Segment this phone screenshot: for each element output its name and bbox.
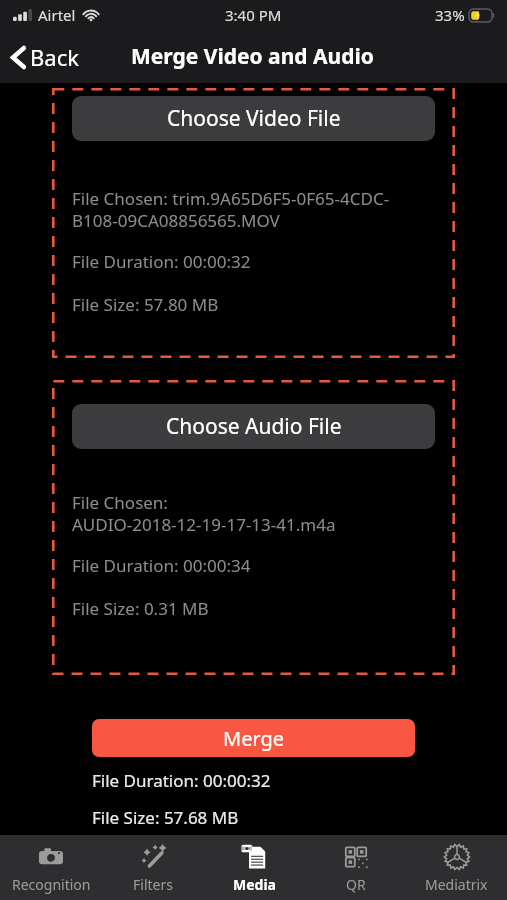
button[interactable]: Choose Audio File	[72, 404, 435, 449]
staticText: Media	[233, 875, 276, 894]
button[interactable]: Merge	[92, 719, 415, 757]
staticText: File Chosen: trim.9A65D6F5-0F65-4CDC-B10…	[72, 187, 435, 232]
staticText: Choose Video File	[167, 104, 341, 133]
button[interactable]: Choose Video File	[72, 96, 435, 141]
staticText: File Duration: 00:00:34	[72, 554, 251, 577]
staticText: 3:40 PM	[225, 5, 282, 25]
staticText: File Duration: 00:00:32	[72, 250, 251, 273]
staticText: Filters	[133, 875, 173, 894]
button[interactable]: Recognition	[0, 835, 102, 900]
button[interactable]: Mediatrix	[406, 835, 507, 900]
button[interactable]: Media	[204, 835, 305, 900]
staticText: File Size: 57.80 MB	[72, 293, 219, 316]
staticText: File Size: 0.31 MB	[72, 597, 209, 620]
staticText: Mediatrix	[425, 875, 488, 894]
button[interactable]: QR	[305, 835, 406, 900]
staticText: Merge Video and Audio	[131, 42, 374, 71]
staticText: Recognition	[12, 875, 91, 894]
button[interactable]: Filters	[102, 835, 204, 900]
staticText: QR	[346, 875, 366, 894]
staticText: File Duration: 00:00:32	[92, 769, 271, 792]
button[interactable]: Back	[0, 35, 89, 79]
staticText: Choose Audio File	[166, 412, 342, 441]
staticText: 33%	[435, 5, 465, 25]
staticText: File Size: 57.68 MB	[92, 806, 239, 829]
staticText: Back	[30, 42, 79, 72]
staticText: Airtel	[38, 5, 76, 25]
staticText: File Chosen: AUDIO-2018-12-19-17-13-41.m…	[72, 491, 336, 536]
staticText: Merge	[223, 725, 285, 752]
